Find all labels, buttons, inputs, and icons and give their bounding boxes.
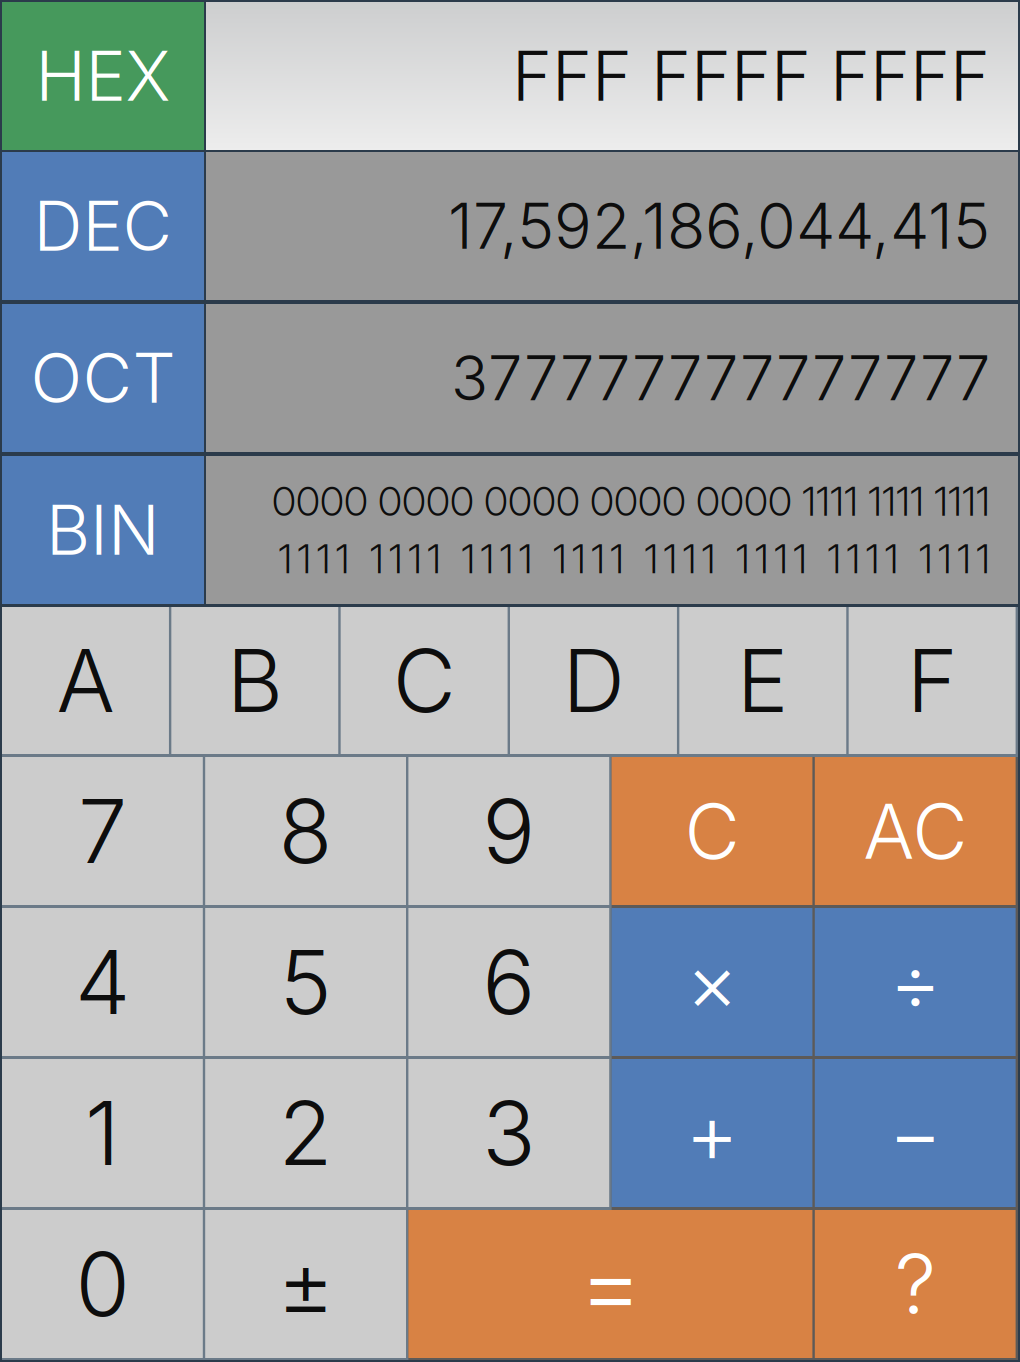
button[interactable]: All clear xyxy=(815,757,1016,905)
button[interactable]: Multiply xyxy=(612,908,812,1056)
staticText: + xyxy=(685,1083,739,1183)
staticText: DEC xyxy=(33,185,172,267)
staticText: B xyxy=(227,628,283,733)
staticText: 0 xyxy=(75,1231,129,1337)
button[interactable]: Decimal value 17,592,186,044,415 xyxy=(206,152,1018,300)
button[interactable]: 7 xyxy=(2,757,203,905)
button[interactable]: Clear xyxy=(612,757,812,905)
staticText: D xyxy=(562,628,624,733)
staticText: 17,592,186,044,415 xyxy=(448,188,990,264)
staticText: 8 xyxy=(279,778,333,884)
button[interactable]: 9 xyxy=(408,757,609,905)
button[interactable]: Add xyxy=(612,1059,812,1207)
staticText: 377777777777777 xyxy=(451,341,990,415)
button[interactable]: 3 xyxy=(408,1059,609,1207)
staticText: ÷ xyxy=(889,934,941,1030)
button[interactable]: 6 xyxy=(408,908,609,1056)
button[interactable]: Help xyxy=(815,1210,1016,1358)
staticText: 9 xyxy=(482,778,535,884)
staticText: F xyxy=(907,628,958,733)
staticText: E xyxy=(737,628,789,733)
staticText: AC xyxy=(863,785,967,877)
staticText: FFF FFFF FFFF xyxy=(512,35,990,117)
button[interactable]: F xyxy=(849,607,1016,754)
staticText: OCT xyxy=(30,337,175,419)
button[interactable]: 1 xyxy=(2,1059,203,1207)
staticText: 1 xyxy=(85,1080,120,1186)
button[interactable]: 8 xyxy=(205,757,406,905)
button[interactable]: B xyxy=(171,607,338,754)
button[interactable]: Plus or minus xyxy=(205,1210,406,1358)
staticText: HEX xyxy=(35,35,170,117)
staticText: × xyxy=(686,934,738,1030)
staticText: A xyxy=(56,628,114,733)
staticText: 1111 1111 1111 1111 1111 1111 1111 1111 xyxy=(278,534,990,583)
staticText: C xyxy=(393,628,456,733)
button[interactable]: BIN xyxy=(2,456,204,604)
button[interactable]: DEC xyxy=(2,152,204,300)
staticText: 3 xyxy=(482,1080,535,1186)
staticText: C xyxy=(684,785,739,877)
staticText: 0000 0000 0000 0000 0000 1111 1111 1111 xyxy=(272,477,990,525)
staticText: BIN xyxy=(46,489,160,571)
button[interactable]: Binary value xyxy=(206,456,1018,604)
button[interactable]: C xyxy=(341,607,508,754)
button[interactable]: Divide xyxy=(815,908,1016,1056)
staticText: ± xyxy=(277,1231,334,1337)
button[interactable]: 2 xyxy=(205,1059,406,1207)
staticText: 6 xyxy=(482,929,535,1035)
staticText: 5 xyxy=(280,929,332,1035)
staticText: − xyxy=(888,1083,942,1183)
staticText: 4 xyxy=(75,929,130,1035)
button[interactable]: Subtract xyxy=(815,1059,1016,1207)
button[interactable]: Equals xyxy=(408,1210,812,1358)
staticText: 7 xyxy=(78,778,127,884)
staticText: ? xyxy=(895,1234,936,1334)
button[interactable]: A xyxy=(2,607,169,754)
button[interactable]: 4 xyxy=(2,908,203,1056)
button[interactable]: D xyxy=(510,607,677,754)
button[interactable]: OCT xyxy=(2,304,204,452)
staticText: = xyxy=(578,1224,642,1344)
button[interactable]: E xyxy=(679,607,846,754)
button[interactable]: 0 xyxy=(2,1210,203,1358)
button[interactable]: Hexadecimal value FFF FFFF FFFF xyxy=(206,2,1018,150)
button[interactable]: HEX xyxy=(2,2,204,150)
staticText: 2 xyxy=(279,1080,333,1186)
button[interactable]: Octal value 377777777777777 xyxy=(206,304,1018,452)
button[interactable]: 5 xyxy=(205,908,406,1056)
